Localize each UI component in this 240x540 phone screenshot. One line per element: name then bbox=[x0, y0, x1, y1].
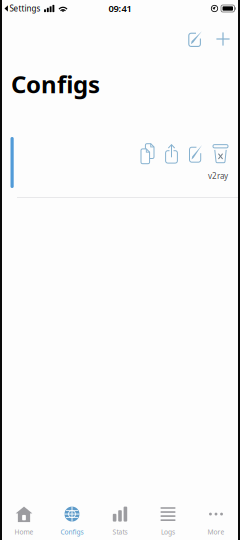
staticText: Home bbox=[14, 528, 33, 536]
staticText: Stats bbox=[112, 528, 127, 536]
button[interactable]: Add bbox=[210, 24, 236, 54]
button[interactable]: Share bbox=[165, 144, 178, 164]
button[interactable]: Stats bbox=[96, 500, 144, 540]
button[interactable]: Logs bbox=[144, 500, 192, 540]
button[interactable]: Edit bbox=[189, 145, 202, 163]
staticText: 09:41 bbox=[108, 2, 131, 15]
staticText: Configs bbox=[11, 68, 100, 100]
button[interactable]: Delete bbox=[213, 144, 228, 163]
staticText: Logs bbox=[161, 528, 175, 536]
button[interactable]: Back to Settings bbox=[4, 3, 40, 14]
button[interactable]: Configs bbox=[48, 500, 96, 540]
staticText: Settings bbox=[9, 3, 40, 14]
button[interactable]: Copy bbox=[141, 144, 154, 164]
staticText: v2ray bbox=[208, 171, 228, 181]
staticText: More bbox=[207, 528, 224, 536]
staticText: Configs bbox=[60, 528, 83, 536]
button[interactable]: Compose bbox=[180, 24, 210, 54]
button[interactable]: Home bbox=[0, 500, 48, 540]
button[interactable]: More bbox=[192, 500, 240, 540]
